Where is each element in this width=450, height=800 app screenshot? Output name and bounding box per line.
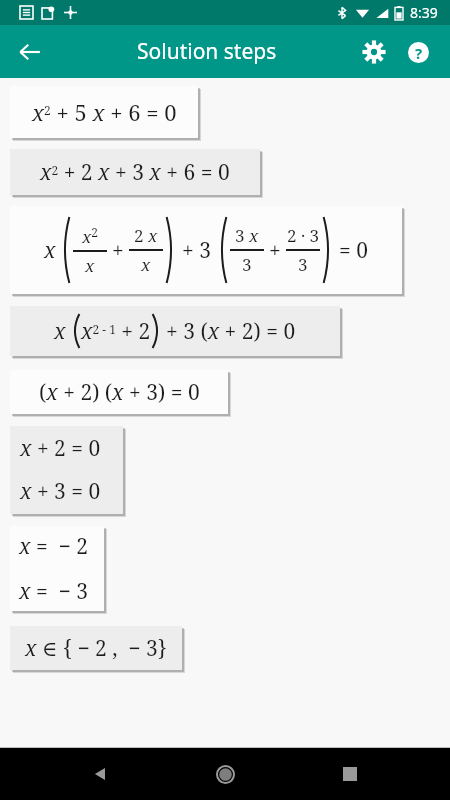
- staticText: = 0: [339, 236, 368, 265]
- staticText: x2: [82, 224, 98, 248]
- button[interactable]: Recents: [326, 750, 374, 798]
- button[interactable]: Back: [8, 30, 52, 74]
- staticText: x + 2 = 0: [20, 434, 101, 463]
- staticText: (x + 2) (x + 3) = 0: [39, 378, 200, 407]
- button[interactable]: x: [10, 306, 340, 356]
- button[interactable]: Help: [396, 30, 440, 74]
- staticText: x + 3 = 0: [20, 477, 101, 506]
- button[interactable]: Back: [77, 750, 125, 798]
- staticText: x: [141, 253, 151, 276]
- button[interactable]: x = − 2: [10, 526, 104, 611]
- staticText: x ∈ { − 2 , − 3}: [25, 634, 167, 663]
- button[interactable]: x2 + 5 x + 6 = 0: [10, 86, 198, 138]
- staticText: 3 x: [235, 224, 259, 247]
- staticText: ?: [415, 43, 423, 63]
- staticText: 3: [242, 253, 252, 276]
- button[interactable]: Home: [201, 750, 249, 798]
- staticText: +: [269, 236, 281, 265]
- staticText: x: [44, 236, 56, 265]
- staticText: Solution steps: [137, 37, 277, 66]
- staticText: 2 · 3: [287, 224, 320, 247]
- staticText: x: [54, 317, 66, 346]
- staticText: 8:39: [410, 3, 438, 22]
- staticText: 3: [298, 253, 308, 276]
- staticText: x2 - 1 + 2: [81, 317, 151, 346]
- staticText: x2 + 5 x + 6 = 0: [32, 97, 177, 127]
- staticText: x = − 3: [19, 577, 88, 606]
- staticText: 2 x: [134, 224, 158, 247]
- button[interactable]: x ∈ { − 2 , − 3}: [10, 626, 182, 670]
- button[interactable]: (x + 2) (x + 3) = 0: [10, 370, 228, 414]
- button[interactable]: Settings: [352, 30, 396, 74]
- staticText: + 3 (x + 2) = 0: [166, 317, 296, 346]
- button[interactable]: x: [10, 206, 402, 294]
- button[interactable]: x2 + 2 x + 3 x + 6 = 0: [10, 149, 260, 195]
- staticText: x2 + 2 x + 3 x + 6 = 0: [40, 158, 230, 187]
- staticText: +: [112, 236, 124, 265]
- button[interactable]: x + 2 = 0: [10, 426, 123, 514]
- staticText: x: [85, 254, 95, 277]
- staticText: + 3: [182, 236, 211, 265]
- staticText: x = − 2: [19, 532, 88, 561]
